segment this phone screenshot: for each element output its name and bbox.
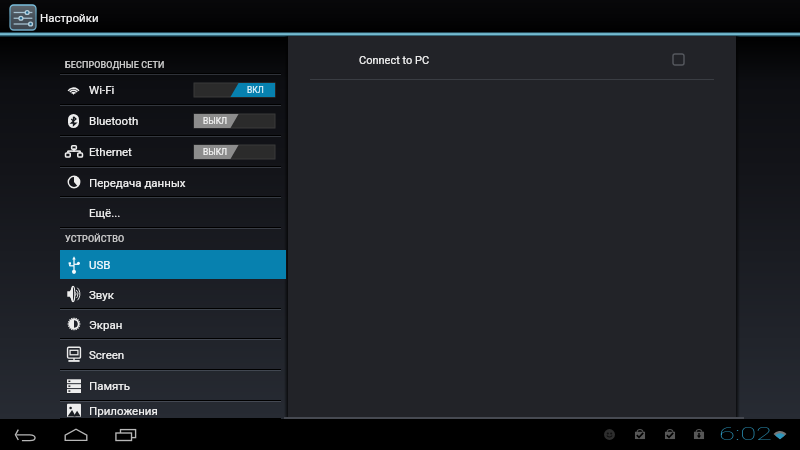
staticText: БЕСПРОВОДНЫЕ СЕТИ: [65, 60, 165, 71]
staticText: ВЫКЛ: [203, 116, 228, 126]
staticText: Bluetooth: [89, 114, 139, 127]
staticText: ВЫКЛ: [203, 147, 228, 157]
staticText: Screen: [89, 348, 125, 361]
button[interactable]: Память: [0, 370, 287, 401]
button[interactable]: Настройки: [0, 0, 800, 33]
button[interactable]: Back: [10, 419, 41, 450]
button[interactable]: USB: [60, 250, 286, 279]
button[interactable]: Передача данных: [0, 167, 287, 197]
button[interactable]: Bluetooth: [0, 105, 287, 136]
staticText: Ethernet: [89, 145, 132, 158]
staticText: Приложения: [89, 404, 158, 417]
button[interactable]: Ethernet: [0, 136, 287, 167]
button[interactable]: Recent apps: [110, 419, 141, 450]
staticText: Передача данных: [89, 176, 186, 189]
button[interactable]: Экран: [0, 309, 287, 339]
staticText: Звук: [89, 288, 114, 301]
button[interactable]: Ещё...: [0, 197, 287, 228]
button[interactable]: Home: [60, 419, 91, 450]
staticText: Память: [89, 379, 131, 392]
staticText: УСТРОЙСТВО: [65, 234, 125, 245]
staticText: 6:02: [719, 422, 772, 444]
staticText: Connect to PC: [359, 54, 430, 67]
button[interactable]: Screen: [0, 339, 287, 370]
staticText: Wi-Fi: [89, 83, 115, 96]
staticText: ВКЛ: [247, 85, 264, 95]
staticText: Настройки: [40, 11, 99, 24]
staticText: Ещё...: [89, 206, 121, 219]
button[interactable]: Connect to PC: [288, 36, 736, 79]
button[interactable]: Приложения: [0, 401, 287, 419]
staticText: Экран: [89, 318, 123, 331]
button[interactable]: Звук: [0, 279, 287, 309]
button[interactable]: Wi-Fi: [0, 74, 287, 105]
staticText: USB: [89, 258, 111, 271]
